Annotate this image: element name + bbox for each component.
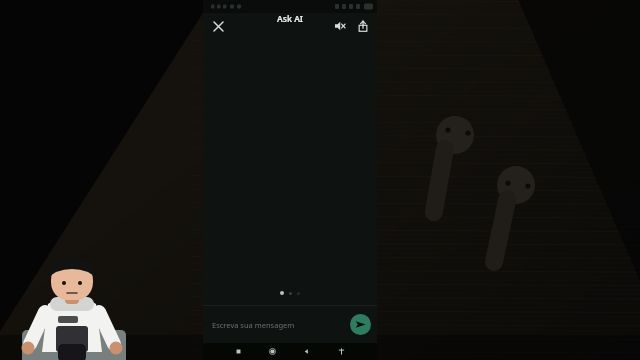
button[interactable]: Share	[353, 16, 373, 36]
button[interactable]: Keyboard	[324, 343, 359, 360]
button[interactable]: Back	[289, 343, 324, 360]
staticText: Escreva sua mensagem	[212, 320, 295, 330]
button[interactable]: Send	[350, 314, 371, 335]
button[interactable]: Home	[255, 343, 289, 360]
button[interactable]: Mute	[330, 16, 350, 36]
staticText: Ask AI	[277, 13, 303, 25]
button[interactable]: Close	[208, 16, 228, 36]
button[interactable]: Recents	[221, 343, 255, 360]
